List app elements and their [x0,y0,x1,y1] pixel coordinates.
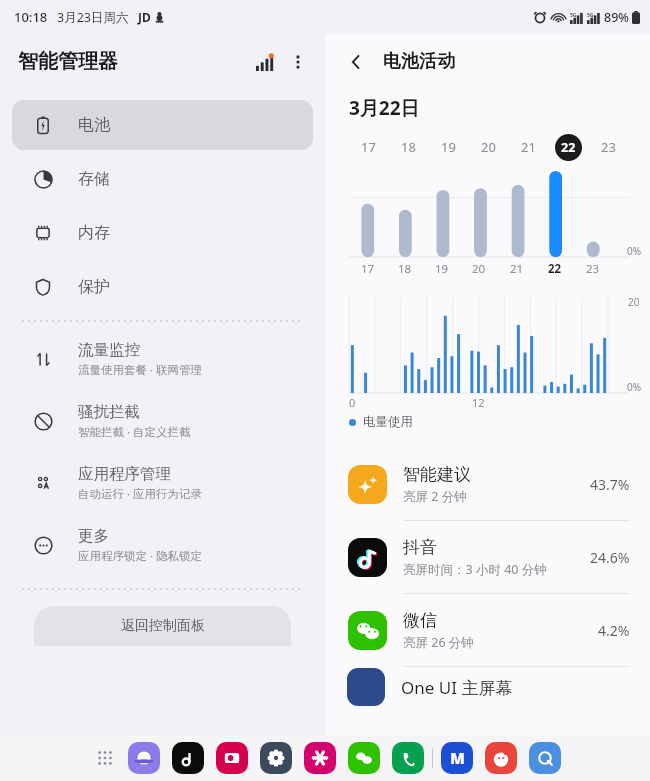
staticText: 亮屏时间：3 小时 40 分钟 [403,561,547,578]
staticText: 18 [398,261,412,277]
button[interactable]: 21 [508,133,548,161]
button[interactable]: 22 [548,133,588,161]
staticText: 内存 [78,223,110,243]
staticText: 24.6% [590,548,630,567]
button[interactable]: App [260,742,292,774]
staticText: 17 [361,138,376,156]
button[interactable]: 20 [468,133,508,161]
button[interactable]: 流量监控 [0,328,325,390]
staticText: 抖音 [403,537,437,558]
staticText: 返回控制面板 [121,617,205,635]
button[interactable]: 18 [388,133,428,161]
button[interactable]: App [304,742,336,774]
staticText: 流量监控 [78,340,140,360]
staticText: 22 [548,261,562,277]
staticText: 电量使用 [363,414,413,430]
staticText: 3月23日周六 [57,9,129,26]
staticText: 43.7% [590,475,630,494]
button[interactable]: More options [281,45,315,79]
button[interactable]: App [441,742,473,774]
staticText: JD [138,9,151,25]
staticText: 22 [561,139,576,156]
staticText: 0% [627,380,642,394]
staticText: 20 [472,261,486,277]
button[interactable]: App [216,742,248,774]
staticText: 5G [570,12,577,19]
staticText: 23 [601,138,616,156]
staticText: 19 [441,138,456,156]
button[interactable]: 电池 [12,100,313,150]
staticText: 10:18 [14,8,48,26]
staticText: 电池 [78,115,110,135]
button[interactable]: App [348,742,380,774]
staticText: One UI 主屏幕 [401,676,513,699]
staticText: 亮屏 26 分钟 [403,634,474,651]
button[interactable]: Back [337,43,375,81]
button[interactable]: 骚扰拦截 [0,390,325,452]
button[interactable]: 17 [349,133,388,161]
staticText: 5G [587,12,594,19]
staticText: 流量使用套餐 · 联网管理 [78,362,203,378]
button[interactable]: 内存 [12,208,313,258]
button[interactable]: 23 [588,133,628,161]
staticText: 18 [401,138,416,156]
button[interactable]: 19 [428,133,468,161]
button[interactable]: All apps [96,749,114,767]
button[interactable]: 应用程序管理 [0,452,325,514]
staticText: 智能拦截 · 自定义拦截 [78,424,191,440]
button[interactable]: 存储 [12,154,313,204]
staticText: 应用程序管理 [78,464,171,484]
staticText: 21 [510,261,524,277]
button[interactable]: App [485,742,517,774]
staticText: 21 [521,138,536,156]
staticText: 17 [361,261,375,277]
button[interactable]: 微信 [325,594,650,666]
staticText: 20 [628,295,640,309]
staticText: 保护 [78,277,110,297]
button[interactable]: 抖音 [325,521,650,593]
staticText: 3月22日 [349,95,420,121]
staticText: M [450,748,465,768]
staticText: 20 [481,138,496,156]
button[interactable]: App [172,742,204,774]
staticText: 4.2% [598,621,630,640]
staticText: 电池活动 [383,50,455,73]
staticText: 微信 [403,610,437,631]
staticText: 12 [472,395,485,410]
button[interactable]: 返回控制面板 [34,606,291,646]
button[interactable]: 更多 [0,514,325,576]
staticText: 89% [604,9,629,26]
button[interactable]: Usage stats [247,45,281,79]
button[interactable]: App [128,742,160,774]
staticText: 智能管理器 [18,49,118,74]
staticText: 更多 [78,526,109,546]
staticText: 0% [627,244,642,258]
button[interactable]: 智能建议 [325,448,650,520]
staticText: 存储 [78,169,110,189]
button[interactable]: App [529,742,561,774]
staticText: 0 [349,395,356,410]
button[interactable]: 保护 [12,262,313,312]
staticText: 应用程序锁定 · 隐私锁定 [78,548,203,564]
staticText: 23 [586,261,600,277]
staticText: 智能建议 [403,464,471,485]
staticText: 19 [435,261,449,277]
staticText: 自动运行 · 应用行为记录 [78,486,203,502]
staticText: 骚扰拦截 [78,402,140,422]
staticText: 亮屏 2 分钟 [403,488,467,505]
button[interactable]: One UI 主屏幕 [325,667,650,707]
button[interactable]: App [392,742,424,774]
